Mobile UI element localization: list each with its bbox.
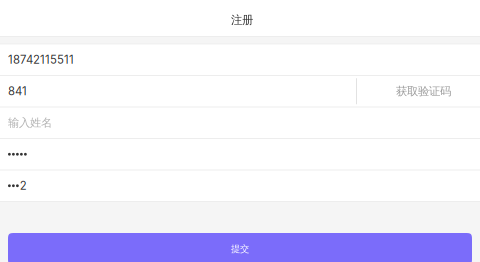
staticText: 2 (20, 179, 27, 193)
staticText: 提交 (231, 243, 249, 255)
staticText: 输入姓名 (8, 116, 52, 130)
button[interactable]: 确认密码 (0, 170, 480, 201)
button[interactable]: 18742115511 (0, 44, 480, 75)
staticText: 注册 (231, 13, 253, 27)
staticText: 获取验证码 (396, 84, 451, 98)
button[interactable]: 841 (0, 76, 356, 106)
button[interactable]: 提交 (8, 233, 472, 262)
staticText: 18742115511 (8, 53, 74, 67)
button[interactable]: 获取验证码 (357, 76, 480, 106)
staticText: 841 (8, 84, 27, 98)
button[interactable]: 输入姓名 (0, 107, 480, 138)
button[interactable]: 密码 (0, 139, 480, 169)
